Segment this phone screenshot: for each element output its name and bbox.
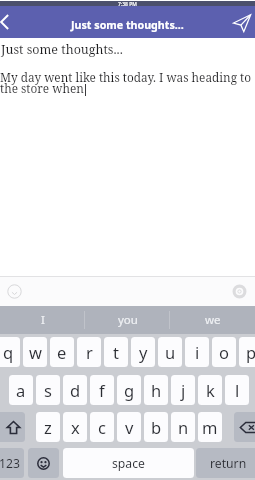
button[interactable]: o: [212, 337, 236, 367]
staticText: b: [151, 416, 162, 438]
staticText: p: [246, 341, 255, 363]
staticText: you: [118, 312, 138, 328]
button[interactable]: p: [239, 337, 255, 367]
button[interactable]: x: [63, 412, 87, 442]
button[interactable]: f: [90, 375, 114, 405]
button[interactable]: c: [90, 412, 114, 442]
staticText: n: [178, 416, 189, 438]
staticText: k: [206, 379, 215, 401]
button[interactable]: y: [131, 337, 155, 367]
button[interactable]: j: [171, 375, 195, 405]
staticText: I: [41, 312, 45, 328]
button[interactable]: k: [198, 375, 222, 405]
staticText: 123: [0, 455, 20, 472]
button[interactable]: v: [117, 412, 141, 442]
button[interactable]: Emoji: [28, 448, 59, 478]
button[interactable]: w: [23, 337, 47, 367]
button[interactable]: Settings: [229, 281, 249, 301]
staticText: t: [113, 341, 119, 363]
staticText: j: [181, 379, 186, 401]
button[interactable]: i: [185, 337, 209, 367]
button[interactable]: t: [104, 337, 128, 367]
button[interactable]: q: [0, 337, 20, 367]
staticText: e: [57, 341, 67, 363]
staticText: q: [3, 341, 14, 363]
staticText: i: [195, 341, 200, 363]
staticText: m: [202, 416, 218, 438]
staticText: My day went like this today. I was headi…: [0, 69, 253, 97]
staticText: d: [70, 379, 81, 401]
staticText: u: [165, 341, 176, 363]
button[interactable]: d: [63, 375, 87, 405]
button[interactable]: Shift: [0, 412, 25, 442]
button[interactable]: a: [9, 375, 33, 405]
button[interactable]: s: [36, 375, 60, 405]
staticText: f: [99, 379, 105, 401]
button[interactable]: I: [0, 306, 85, 334]
staticText: we: [205, 312, 221, 328]
staticText: Just some thoughts...: [1, 41, 123, 58]
staticText: Just some thoughts...: [71, 18, 184, 33]
button[interactable]: Send: [232, 13, 252, 33]
staticText: r: [86, 341, 93, 363]
button[interactable]: Back: [0, 13, 12, 31]
button[interactable]: Emoji: [4, 281, 24, 301]
staticText: y: [139, 341, 148, 363]
button[interactable]: 123: [0, 448, 24, 478]
staticText: v: [125, 416, 134, 438]
button[interactable]: you: [85, 306, 170, 334]
button[interactable]: r: [77, 337, 101, 367]
staticText: s: [44, 379, 52, 401]
button[interactable]: Backspace: [234, 412, 255, 442]
button[interactable]: g: [117, 375, 141, 405]
button[interactable]: h: [144, 375, 168, 405]
button[interactable]: we: [170, 306, 255, 334]
button[interactable]: n: [171, 412, 195, 442]
staticText: z: [44, 416, 52, 438]
staticText: space: [112, 455, 145, 472]
staticText: a: [16, 379, 26, 401]
button[interactable]: space: [63, 448, 194, 478]
staticText: 7:38 PM: [118, 1, 137, 6]
button[interactable]: z: [36, 412, 60, 442]
staticText: return: [210, 455, 247, 472]
staticText: h: [151, 379, 162, 401]
staticText: l: [235, 379, 240, 401]
button[interactable]: return: [196, 448, 255, 478]
button[interactable]: l: [225, 375, 249, 405]
button[interactable]: b: [144, 412, 168, 442]
staticText: o: [219, 341, 229, 363]
button[interactable]: e: [50, 337, 74, 367]
button[interactable]: u: [158, 337, 182, 367]
staticText: w: [29, 341, 42, 363]
staticText: c: [98, 416, 106, 438]
button[interactable]: m: [198, 412, 222, 442]
staticText: x: [71, 416, 80, 438]
staticText: g: [124, 379, 135, 401]
